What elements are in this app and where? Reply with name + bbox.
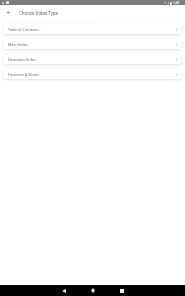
staticText: Main Index	[8, 42, 176, 47]
staticText: Choose Index Type	[19, 10, 59, 16]
button[interactable]: Back	[49, 285, 78, 296]
button[interactable]: Main Index	[4, 39, 181, 49]
button[interactable]: Recent apps	[107, 285, 136, 296]
button[interactable]: Table of Contents...	[4, 24, 181, 34]
button[interactable]: Home	[78, 285, 107, 296]
button[interactable]: Favorites & Notes	[4, 69, 181, 79]
button[interactable]: Back	[3, 7, 13, 17]
staticText: 1:43	[173, 1, 180, 5]
staticText: Flowchart Index	[8, 57, 176, 62]
staticText: Table of Contents...	[8, 27, 176, 32]
button[interactable]: Flowchart Index	[4, 54, 181, 64]
staticText: Favorites & Notes	[8, 72, 176, 77]
